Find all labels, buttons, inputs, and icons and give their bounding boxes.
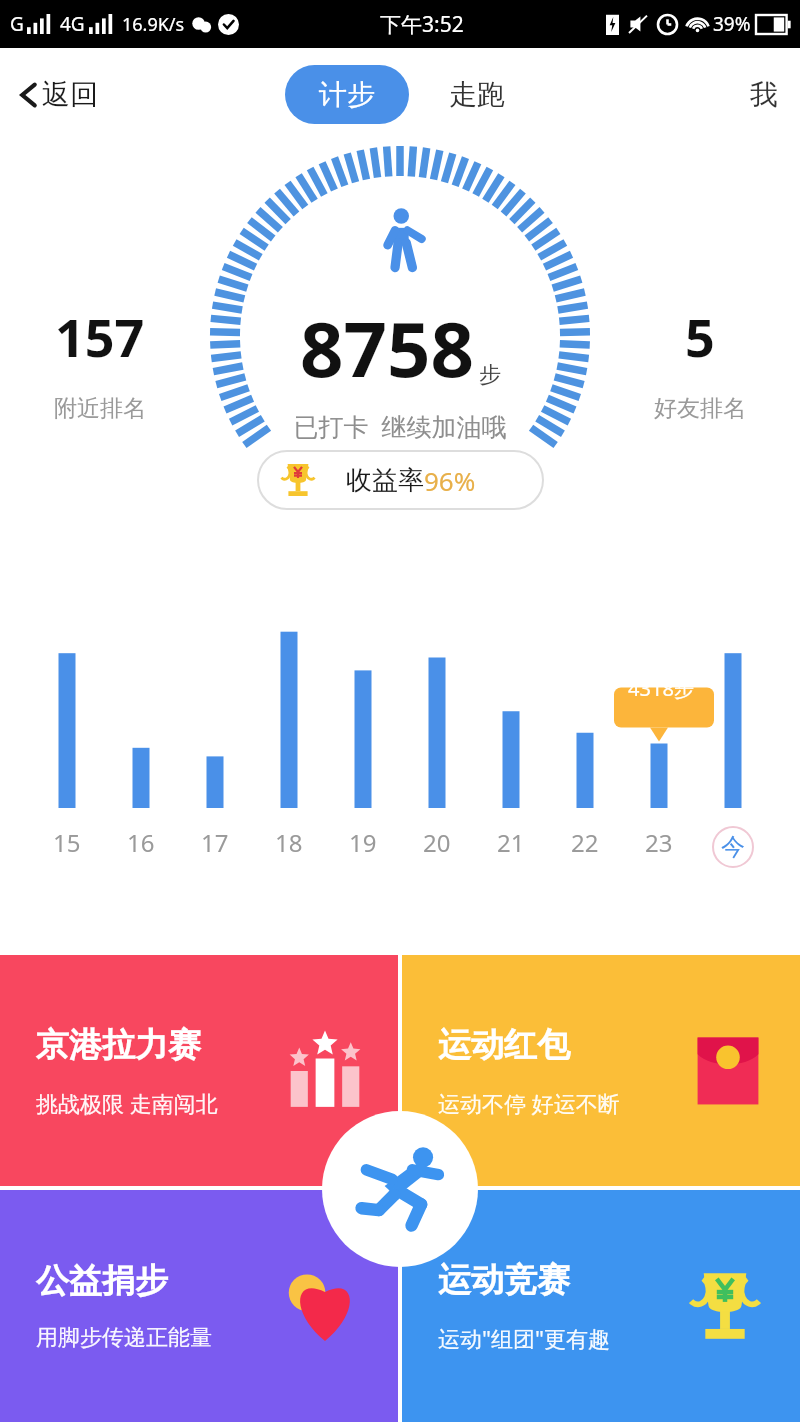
staticText: 运动红包 (438, 1024, 570, 1066)
staticText: 今 (721, 832, 745, 862)
button[interactable]: 运动红包 (402, 955, 800, 1186)
button[interactable]: 公益捐步 (0, 1190, 398, 1422)
staticText: 走跑 (449, 77, 505, 112)
button[interactable]: 我 (728, 65, 800, 124)
staticText: 京港拉力赛 (36, 1024, 201, 1066)
staticText: 附近排名 (54, 394, 146, 423)
button[interactable]: 计步 (285, 65, 409, 124)
staticText: 运动不停 好运不断 (438, 1088, 620, 1118)
staticText: 22 (571, 826, 599, 859)
staticText: 5 (685, 301, 715, 372)
staticText: 20 (423, 826, 451, 859)
staticText: 已打卡 继续加油哦 (293, 409, 507, 443)
staticText: 157 (55, 301, 145, 372)
staticText: 好友排名 (654, 394, 746, 423)
staticText: 21 (497, 826, 525, 859)
button[interactable]: 返回 (0, 67, 112, 122)
staticText: 23 (645, 826, 673, 859)
button[interactable]: 运动竞赛 (402, 1190, 800, 1422)
staticText: 39% (713, 11, 751, 37)
staticText: G (10, 11, 24, 37)
button[interactable]: 收益率 (258, 451, 543, 509)
staticText: 运动竞赛 (438, 1259, 570, 1301)
button[interactable]: 走跑 (439, 65, 515, 124)
staticText: 19 (349, 826, 377, 859)
staticText: 17 (201, 826, 229, 859)
staticText: 挑战极限 走南闯北 (36, 1088, 218, 1118)
staticText: 用脚步传递正能量 (36, 1324, 212, 1352)
button[interactable]: 京港拉力赛 (0, 955, 398, 1186)
staticText: 16.9K/s (122, 12, 185, 37)
staticText: 我 (750, 77, 778, 112)
staticText: 4G (60, 11, 85, 37)
staticText: 96% (424, 463, 476, 498)
staticText: 4318步 (628, 675, 694, 702)
staticText: 16 (127, 826, 155, 859)
staticText: 步 (479, 361, 501, 389)
staticText: 下午3:52 (380, 10, 464, 39)
staticText: 公益捐步 (36, 1260, 168, 1302)
button[interactable]: 开始跑步 (322, 1111, 478, 1267)
staticText: 8758 (300, 296, 474, 400)
button[interactable]: 5 (630, 301, 770, 423)
staticText: 计步 (319, 77, 375, 112)
staticText: 收益率 (346, 464, 424, 497)
staticText: 返回 (42, 77, 98, 112)
button[interactable]: 157 (30, 301, 170, 423)
staticText: 15 (53, 826, 81, 859)
staticText: 运动"组团"更有趣 (438, 1323, 610, 1353)
staticText: 18 (275, 826, 303, 859)
